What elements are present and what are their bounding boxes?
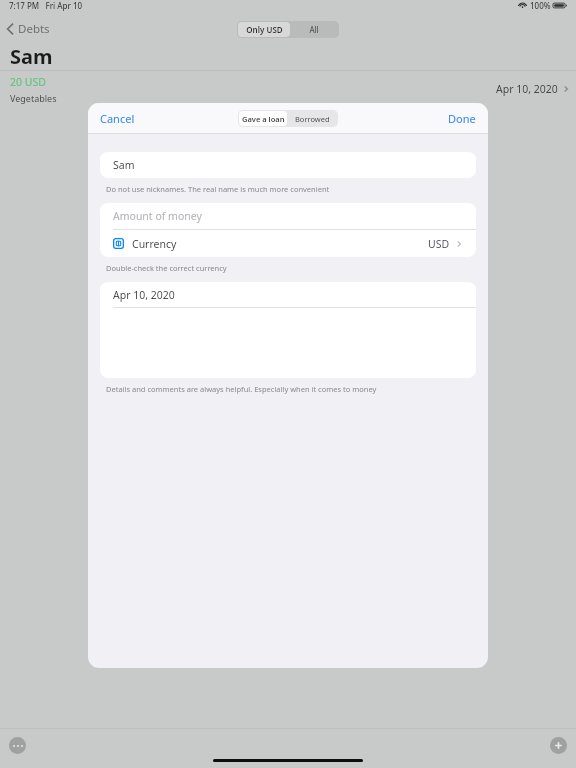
button[interactable]: Gave a loan bbox=[239, 111, 287, 126]
button[interactable]: Done bbox=[448, 111, 476, 126]
other: Currency bbox=[113, 238, 124, 249]
staticText: Currency bbox=[132, 237, 177, 251]
staticText: Debts bbox=[18, 21, 50, 37]
staticText: Only USD bbox=[246, 24, 283, 35]
staticText: Do not use nicknames. The real name is m… bbox=[106, 184, 330, 194]
staticText: All bbox=[309, 24, 319, 35]
staticText: Amount of money bbox=[113, 209, 202, 223]
staticText: Sam bbox=[113, 158, 135, 172]
button[interactable]: More options bbox=[9, 737, 26, 754]
button[interactable]: Cancel bbox=[100, 111, 135, 126]
staticText: Apr 10, 2020 bbox=[496, 82, 558, 96]
staticText: Borrowed bbox=[295, 114, 330, 124]
button[interactable]: Debts bbox=[6, 21, 50, 37]
staticText: 7:17 PM Fri Apr 10 bbox=[9, 0, 83, 11]
staticText: USD bbox=[428, 237, 450, 251]
staticText: Vegetables bbox=[10, 92, 57, 104]
staticText: Apr 10, 2020 bbox=[113, 288, 175, 302]
button[interactable]: All bbox=[290, 22, 338, 37]
staticText: Details and comments are always helpful.… bbox=[106, 384, 377, 394]
staticText: Sam bbox=[10, 43, 53, 70]
button[interactable]: Borrowed bbox=[287, 111, 337, 126]
staticText: Double-check the correct currency bbox=[106, 263, 227, 273]
button[interactable]: 20 USD bbox=[0, 71, 576, 107]
staticText: 100% bbox=[530, 0, 551, 11]
staticText: Gave a loan bbox=[242, 114, 285, 124]
button[interactable]: Only USD bbox=[238, 22, 290, 37]
button[interactable]: Add debt bbox=[550, 737, 567, 754]
staticText: 20 USD bbox=[10, 75, 46, 89]
button[interactable]: Currency bbox=[100, 230, 476, 257]
